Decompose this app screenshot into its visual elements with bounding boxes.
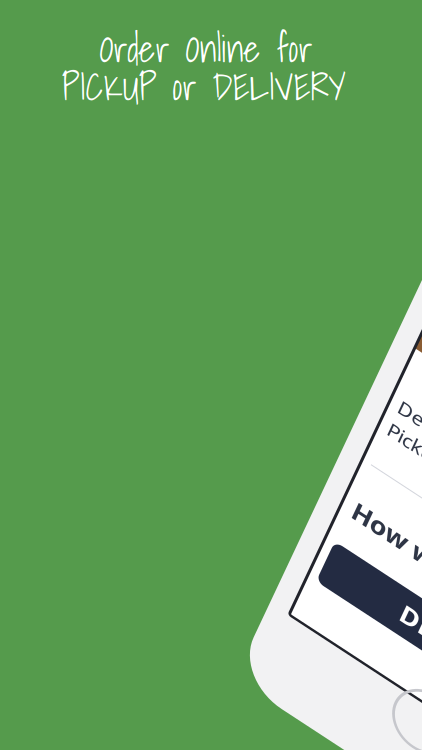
staticText: How would you like your order? xyxy=(28,415,386,445)
staticText: PICKUP or DELIVERY xyxy=(61,58,345,116)
staticText: Order Online for xyxy=(99,20,312,78)
